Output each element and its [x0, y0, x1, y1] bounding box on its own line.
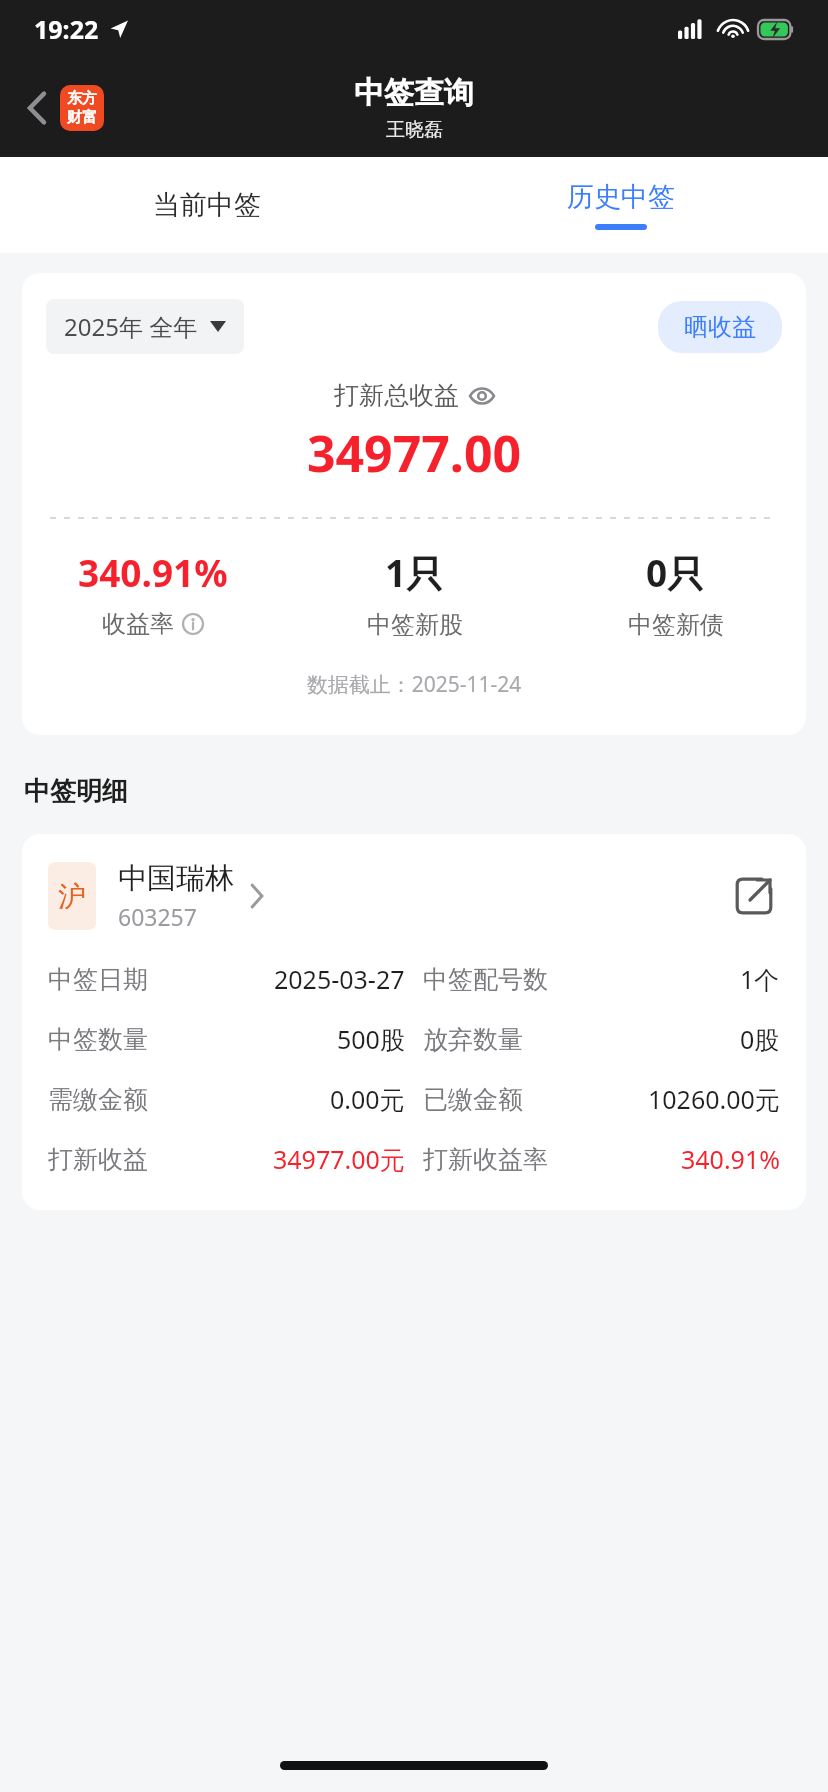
staticText: 王晓磊: [386, 118, 443, 142]
staticText: 当前中签: [153, 188, 261, 222]
staticText: 1只: [385, 547, 444, 598]
button[interactable]: Back: [18, 79, 112, 137]
staticText: 2025年 全年: [64, 310, 198, 343]
staticText: 沪: [58, 879, 86, 914]
button[interactable]: 1只: [284, 547, 545, 640]
staticText: 打新收益率: [423, 1144, 548, 1175]
button[interactable]: 当前中签: [0, 157, 414, 253]
staticText: 0.00元: [330, 1082, 405, 1116]
staticText: 500股: [337, 1022, 405, 1056]
staticText: 中签新股: [367, 610, 463, 640]
staticText: 1个: [740, 962, 780, 996]
staticText: 10260.00元: [648, 1082, 780, 1116]
button[interactable]: 340.91%: [22, 547, 284, 639]
button[interactable]: 0只: [545, 547, 806, 640]
staticText: 收益率: [102, 609, 174, 639]
staticText: 34977.00: [22, 419, 806, 487]
staticText: 晒收益: [684, 312, 756, 342]
staticText: 东方: [67, 89, 97, 108]
staticText: 0只: [646, 547, 705, 598]
staticText: 已缴金额: [423, 1084, 523, 1115]
staticText: 中签查询: [354, 74, 474, 112]
staticText: 中签明细: [24, 775, 128, 808]
staticText: 数据截止：2025-11-24: [22, 670, 806, 699]
button[interactable]: Toggle visibility: [469, 386, 495, 406]
staticText: 603257: [118, 901, 197, 932]
staticText: 0股: [740, 1022, 780, 1056]
staticText: 中国瑞林: [118, 860, 234, 897]
staticText: 2025-03-27: [274, 962, 405, 996]
staticText: 打新收益: [48, 1144, 148, 1175]
staticText: 340.91%: [78, 547, 228, 597]
staticText: 中签数量: [48, 1024, 148, 1055]
button[interactable]: Open external link: [728, 870, 780, 922]
staticText: 34977.00元: [273, 1142, 405, 1176]
staticText: 中签配号数: [423, 964, 548, 995]
staticText: 340.91%: [681, 1142, 780, 1176]
button[interactable]: 历史中签: [414, 157, 828, 253]
staticText: 财富: [67, 108, 97, 127]
button[interactable]: 沪: [48, 860, 264, 932]
button[interactable]: 晒收益: [658, 301, 782, 353]
staticText: 中签新债: [628, 610, 724, 640]
staticText: 中签日期: [48, 964, 148, 995]
staticText: 打新总收益: [334, 380, 459, 411]
button[interactable]: 2025年 全年: [46, 299, 244, 354]
staticText: 放弃数量: [423, 1024, 523, 1055]
staticText: 19:22: [34, 12, 99, 46]
staticText: 历史中签: [567, 180, 675, 214]
staticText: 需缴金额: [48, 1084, 148, 1115]
